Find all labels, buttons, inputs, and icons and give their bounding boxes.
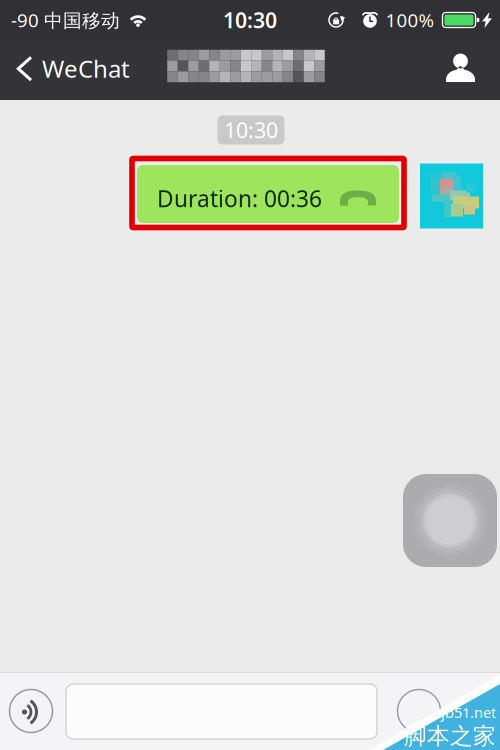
button[interactable]: Contact avatar bbox=[420, 163, 483, 228]
staticText: jb51.net bbox=[441, 703, 496, 722]
button[interactable]: Message input field bbox=[66, 684, 377, 739]
staticText: -90 中国移动 bbox=[11, 8, 120, 32]
staticText: WeChat bbox=[42, 53, 130, 84]
button[interactable]: Hold to talk bbox=[9, 689, 52, 732]
button[interactable]: Duration: 00:36 bbox=[132, 158, 404, 227]
button[interactable]: AssistiveTouch bbox=[403, 474, 497, 567]
staticText: Duration: 00:36 bbox=[157, 183, 322, 213]
staticText: 10:30 bbox=[223, 6, 277, 34]
button[interactable]: WeChat bbox=[0, 40, 138, 100]
button[interactable]: Emoji bbox=[397, 689, 440, 732]
staticText: 10:30 bbox=[224, 116, 278, 144]
staticText: 脚本之家 bbox=[404, 722, 496, 750]
button[interactable]: Contact details bbox=[431, 40, 500, 100]
staticText: 100% bbox=[385, 8, 434, 32]
